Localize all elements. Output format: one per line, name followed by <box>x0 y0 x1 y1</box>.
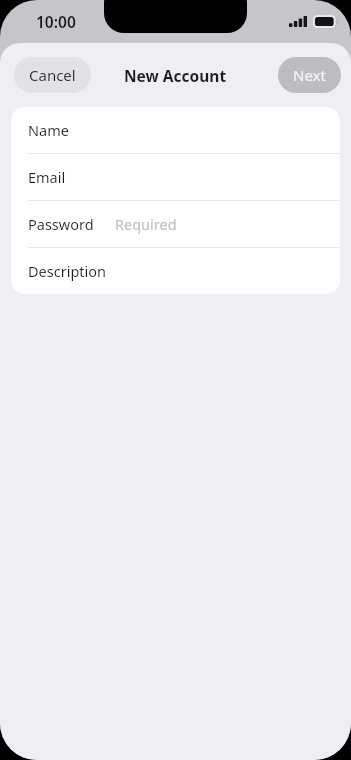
button[interactable]: Cancel <box>14 57 91 93</box>
staticText: Description <box>28 261 107 281</box>
staticText: Required <box>115 214 177 234</box>
staticText: Name <box>28 120 69 140</box>
staticText: Email <box>28 167 66 187</box>
button[interactable]: Next <box>278 57 341 93</box>
staticText: Cancel <box>29 65 76 85</box>
button[interactable]: Name <box>11 107 340 154</box>
button[interactable]: Email <box>11 154 340 201</box>
button[interactable]: Password <box>11 201 340 248</box>
staticText: Password <box>28 214 94 234</box>
button[interactable]: Description <box>11 248 340 294</box>
staticText: New Account <box>124 65 227 86</box>
staticText: 10:00 <box>36 11 76 32</box>
staticText: Next <box>293 65 326 85</box>
